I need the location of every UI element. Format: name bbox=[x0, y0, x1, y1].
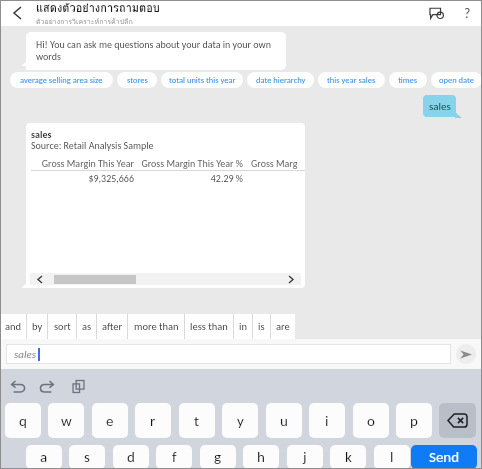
staticText: is bbox=[258, 320, 265, 333]
staticText: a bbox=[40, 448, 48, 466]
button[interactable]: sales bbox=[6, 344, 451, 364]
staticText: more than bbox=[134, 320, 179, 333]
button[interactable]: Backspace bbox=[439, 403, 476, 438]
button[interactable]: are bbox=[271, 314, 295, 339]
staticText: Gross Margin This Year bbox=[31, 157, 134, 169]
button[interactable]: p bbox=[396, 403, 432, 438]
staticText: e bbox=[106, 412, 114, 430]
button[interactable]: e bbox=[92, 403, 128, 438]
staticText: l bbox=[390, 448, 394, 466]
button[interactable]: average selling area size bbox=[10, 72, 113, 88]
staticText: แสดงตัวอย่างการถามตอบ bbox=[36, 0, 160, 16]
button[interactable]: g bbox=[200, 445, 236, 469]
staticText: ? bbox=[464, 5, 471, 22]
staticText: Gross Marg bbox=[251, 157, 298, 169]
button[interactable]: l bbox=[374, 445, 410, 469]
button[interactable]: this year sales bbox=[318, 72, 385, 88]
button[interactable]: Help bbox=[452, 0, 482, 26]
staticText: after bbox=[102, 320, 123, 333]
button[interactable]: Send bbox=[456, 344, 476, 364]
staticText: $9,325,666 bbox=[31, 172, 134, 184]
staticText: i bbox=[325, 412, 329, 430]
button[interactable]: h bbox=[243, 445, 279, 469]
staticText: t bbox=[194, 412, 200, 430]
button[interactable]: times bbox=[389, 72, 427, 88]
staticText: w bbox=[61, 412, 72, 430]
staticText: open date bbox=[439, 75, 475, 85]
button[interactable]: k bbox=[330, 445, 366, 469]
staticText: stores bbox=[127, 75, 148, 85]
button[interactable]: Scroll right bbox=[281, 273, 301, 285]
button[interactable]: and bbox=[0, 314, 26, 339]
button[interactable]: t bbox=[179, 403, 215, 438]
staticText: j bbox=[303, 448, 307, 466]
staticText: ตัวอย่างการวิเคราะห์การค้าปลีก bbox=[36, 16, 133, 25]
button[interactable]: Back bbox=[0, 0, 34, 26]
staticText: are bbox=[276, 320, 290, 333]
button[interactable]: stores bbox=[117, 72, 157, 88]
staticText: p bbox=[410, 412, 418, 430]
staticText: k bbox=[345, 448, 352, 466]
staticText: Send bbox=[429, 448, 460, 466]
staticText: h bbox=[257, 448, 265, 466]
staticText: y bbox=[237, 412, 244, 430]
staticText: in bbox=[239, 320, 247, 333]
staticText: less than bbox=[190, 320, 228, 333]
button[interactable]: sales bbox=[423, 95, 456, 117]
staticText: date hierarchy bbox=[256, 75, 306, 85]
staticText: d bbox=[127, 448, 135, 466]
button[interactable]: d bbox=[113, 445, 149, 469]
button[interactable]: in bbox=[234, 314, 252, 339]
staticText: Source: Retail Analysis Sample bbox=[31, 139, 154, 151]
staticText: by bbox=[32, 320, 43, 333]
staticText: s bbox=[84, 448, 90, 466]
staticText: total units this year bbox=[169, 75, 236, 85]
button[interactable]: as bbox=[77, 314, 96, 339]
staticText: times bbox=[398, 75, 418, 85]
button[interactable]: less than bbox=[185, 314, 233, 339]
button[interactable]: i bbox=[309, 403, 345, 438]
button[interactable]: o bbox=[353, 403, 389, 438]
button[interactable]: w bbox=[48, 403, 84, 438]
staticText: Hi! You can ask me questions about your … bbox=[36, 38, 276, 63]
button[interactable]: Scroll left bbox=[30, 273, 50, 285]
staticText: q bbox=[19, 412, 27, 430]
staticText: Gross Margin This Year % bbox=[136, 157, 243, 169]
staticText: and bbox=[5, 320, 22, 333]
button[interactable]: open date bbox=[431, 72, 482, 88]
button[interactable]: a bbox=[26, 445, 62, 469]
button[interactable]: after bbox=[97, 314, 127, 339]
button[interactable]: Send bbox=[411, 445, 477, 469]
staticText: 42.29 % bbox=[136, 172, 243, 184]
staticText: as bbox=[82, 320, 92, 333]
button[interactable]: j bbox=[287, 445, 323, 469]
staticText: u bbox=[280, 412, 288, 430]
button[interactable]: y bbox=[222, 403, 258, 438]
button[interactable]: sort bbox=[48, 314, 76, 339]
staticText: f bbox=[172, 448, 177, 466]
button[interactable]: s bbox=[69, 445, 105, 469]
button[interactable]: total units this year bbox=[161, 72, 243, 88]
staticText: r bbox=[150, 412, 156, 430]
button[interactable]: Conversation history bbox=[422, 0, 452, 26]
button[interactable]: f bbox=[156, 445, 192, 469]
staticText: this year sales bbox=[327, 75, 376, 85]
button[interactable]: date hierarchy bbox=[247, 72, 314, 88]
staticText: o bbox=[367, 412, 375, 430]
button[interactable]: q bbox=[5, 403, 41, 438]
button[interactable]: r bbox=[135, 403, 171, 438]
button[interactable]: Undo bbox=[5, 373, 31, 399]
staticText: sales bbox=[31, 128, 52, 140]
button[interactable]: more than bbox=[128, 314, 184, 339]
button[interactable]: Copy bbox=[65, 373, 91, 399]
button[interactable]: is bbox=[253, 314, 270, 339]
staticText: g bbox=[214, 448, 222, 466]
button[interactable]: u bbox=[266, 403, 302, 438]
staticText: sort bbox=[54, 320, 71, 333]
staticText: sales bbox=[429, 100, 451, 113]
staticText: average selling area size bbox=[20, 75, 103, 85]
button[interactable]: Redo bbox=[33, 373, 59, 399]
button[interactable]: by bbox=[27, 314, 47, 339]
staticText: sales bbox=[14, 348, 36, 361]
